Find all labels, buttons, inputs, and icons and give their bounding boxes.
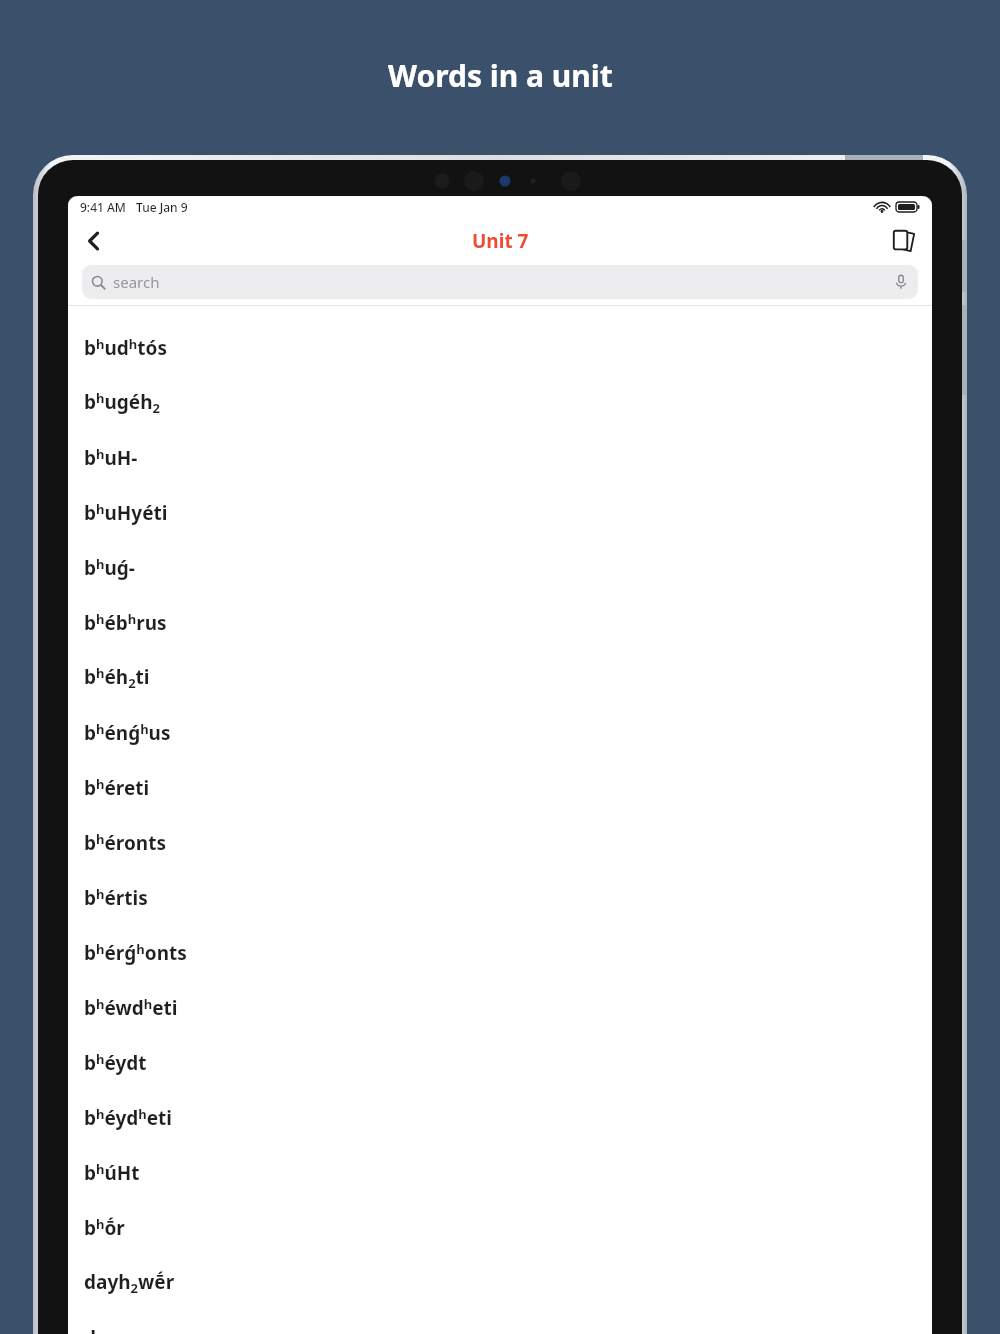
button[interactable]: Cards <box>882 219 926 263</box>
button[interactable]: bhénǵhus <box>68 705 932 760</box>
staticText: search <box>113 272 160 292</box>
staticText: bhéreti <box>84 775 150 801</box>
button[interactable]: bhéreti <box>68 760 932 815</box>
staticText: bhébhrus <box>84 610 167 636</box>
staticText: bhértis <box>84 885 148 911</box>
staticText: bhénǵhus <box>84 720 171 746</box>
staticText: dayh2wḗr <box>84 1269 175 1297</box>
button[interactable]: bhṓr <box>68 1200 932 1255</box>
staticText: bhéronts <box>84 830 166 856</box>
staticText: bhuH- <box>84 445 138 471</box>
button[interactable]: bhébhrus <box>68 595 932 650</box>
button[interactable]: bhúHt <box>68 1145 932 1200</box>
button[interactable]: Back <box>72 219 116 263</box>
other: Voice search <box>893 274 909 290</box>
button[interactable]: bhértis <box>68 870 932 925</box>
staticText: Words in a unit <box>388 55 613 96</box>
staticText: Unit 7 <box>472 228 529 254</box>
button[interactable]: bhugéh2 <box>68 375 932 430</box>
staticText: bhéydt <box>84 1050 147 1076</box>
button[interactable]: search <box>82 265 918 299</box>
staticText: bhuǵ- <box>84 555 135 581</box>
staticText: bhuHyéti <box>84 500 168 526</box>
button[interactable]: bhéh2ti <box>68 650 932 705</box>
button[interactable]: bhéronts <box>68 815 932 870</box>
button[interactable]: de <box>68 1310 932 1334</box>
staticText: bhúHt <box>84 1160 140 1186</box>
button[interactable]: bhudhtós <box>68 320 932 375</box>
staticText: Tue Jan 9 <box>136 199 188 215</box>
button[interactable]: bhéydt <box>68 1035 932 1090</box>
staticText: bhṓr <box>84 1215 125 1241</box>
button[interactable]: bhéwdheti <box>68 980 932 1035</box>
button[interactable]: bhéydheti <box>68 1090 932 1145</box>
staticText: bhérǵhonts <box>84 940 187 966</box>
staticText: bhéwdheti <box>84 995 178 1021</box>
staticText: bhéydheti <box>84 1105 172 1131</box>
staticText: bhugéh2 <box>84 389 160 417</box>
button[interactable]: bhuH- <box>68 430 932 485</box>
staticText: de <box>84 1325 108 1334</box>
staticText: 9:41 AM <box>80 199 126 215</box>
button[interactable]: dayh2wḗr <box>68 1255 932 1310</box>
staticText: bhéh2ti <box>84 664 150 692</box>
button[interactable]: bhuǵ- <box>68 540 932 595</box>
staticText: bhudhtós <box>84 335 167 361</box>
button[interactable]: bhuHyéti <box>68 485 932 540</box>
button[interactable]: bhérǵhonts <box>68 925 932 980</box>
